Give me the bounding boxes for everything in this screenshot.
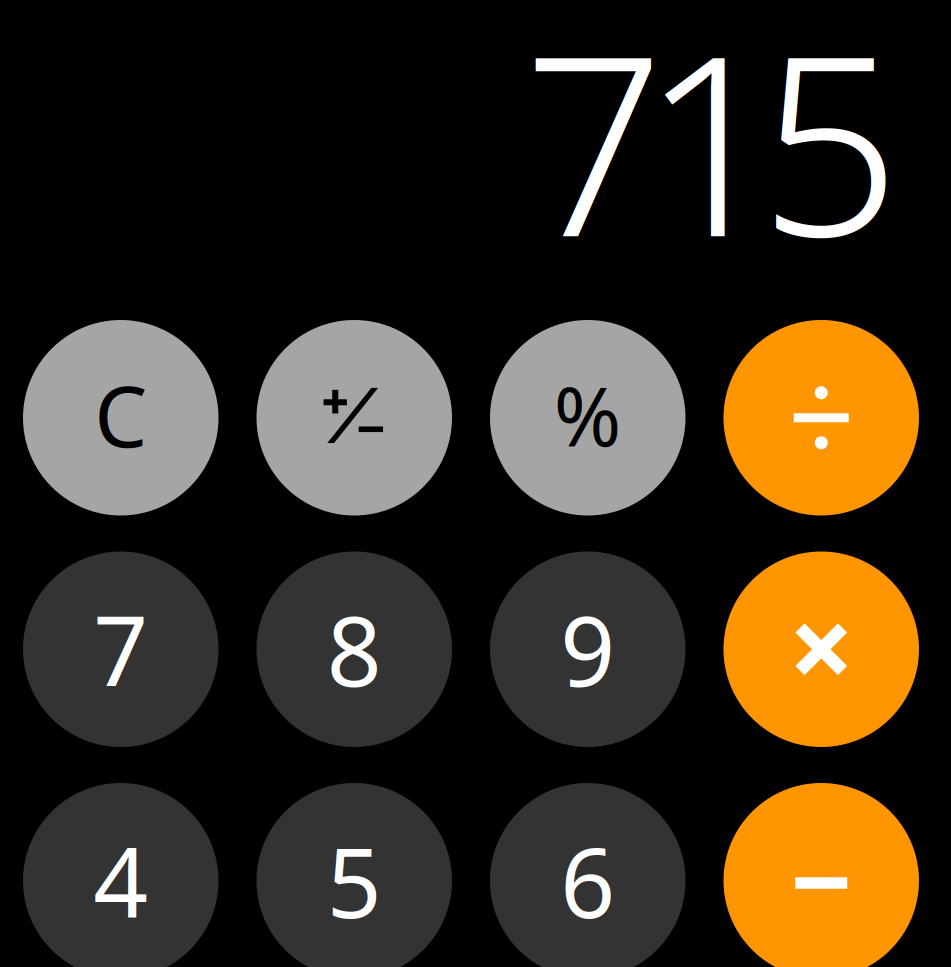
button[interactable]: Minus: [723, 783, 919, 967]
button[interactable]: Plus minus: [256, 320, 452, 515]
button[interactable]: C: [23, 320, 218, 515]
button[interactable]: Multiply: [723, 551, 919, 747]
staticText: C: [94, 359, 147, 470]
staticText: 9: [560, 585, 615, 713]
button[interactable]: 8: [256, 551, 452, 747]
button[interactable]: 5: [256, 783, 452, 967]
button[interactable]: 4: [23, 783, 218, 967]
button[interactable]: %: [490, 320, 685, 515]
staticText: %: [554, 361, 622, 469]
staticText: 8: [327, 585, 382, 713]
staticText: 7: [93, 585, 148, 713]
button[interactable]: Divide: [723, 320, 919, 515]
button[interactable]: 6: [490, 783, 685, 967]
staticText: 715: [523, 0, 901, 305]
staticText: 6: [560, 817, 615, 944]
staticText: 5: [327, 817, 382, 944]
button[interactable]: 9: [490, 551, 685, 747]
button[interactable]: 7: [23, 551, 218, 747]
staticText: 4: [93, 817, 148, 944]
